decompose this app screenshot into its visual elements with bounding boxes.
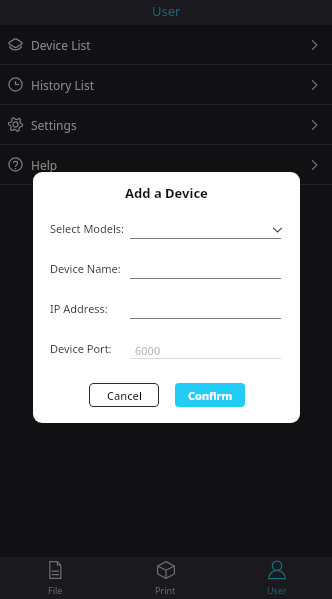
staticText: User <box>267 584 287 596</box>
staticText: Help <box>31 157 58 173</box>
staticText: Device List <box>31 37 91 53</box>
button[interactable]: User <box>221 557 332 599</box>
staticText: Settings <box>31 117 77 133</box>
button[interactable]: Confirm <box>175 383 245 407</box>
button[interactable]: File <box>0 557 110 599</box>
staticText: Add a Device <box>33 184 300 202</box>
button[interactable]: History List <box>0 65 332 105</box>
staticText: Device Name: <box>50 261 121 276</box>
button[interactable]: Open model dropdown <box>272 224 283 235</box>
staticText: History List <box>31 77 94 93</box>
staticText: Print <box>155 584 176 596</box>
staticText: File <box>48 584 63 596</box>
button[interactable]: Device List <box>0 25 332 65</box>
button[interactable]: Settings <box>0 105 332 145</box>
button[interactable]: Cancel <box>89 383 159 407</box>
staticText: Device Port: <box>50 341 112 356</box>
button[interactable]: Help <box>0 145 332 185</box>
staticText: Cancel <box>107 388 142 403</box>
staticText: User <box>152 2 181 20</box>
staticText: IP Address: <box>50 301 108 316</box>
staticText: 6000 <box>135 343 161 358</box>
staticText: Select Models: <box>50 221 125 236</box>
button[interactable]: Print <box>110 557 221 599</box>
staticText: Confirm <box>188 388 233 403</box>
